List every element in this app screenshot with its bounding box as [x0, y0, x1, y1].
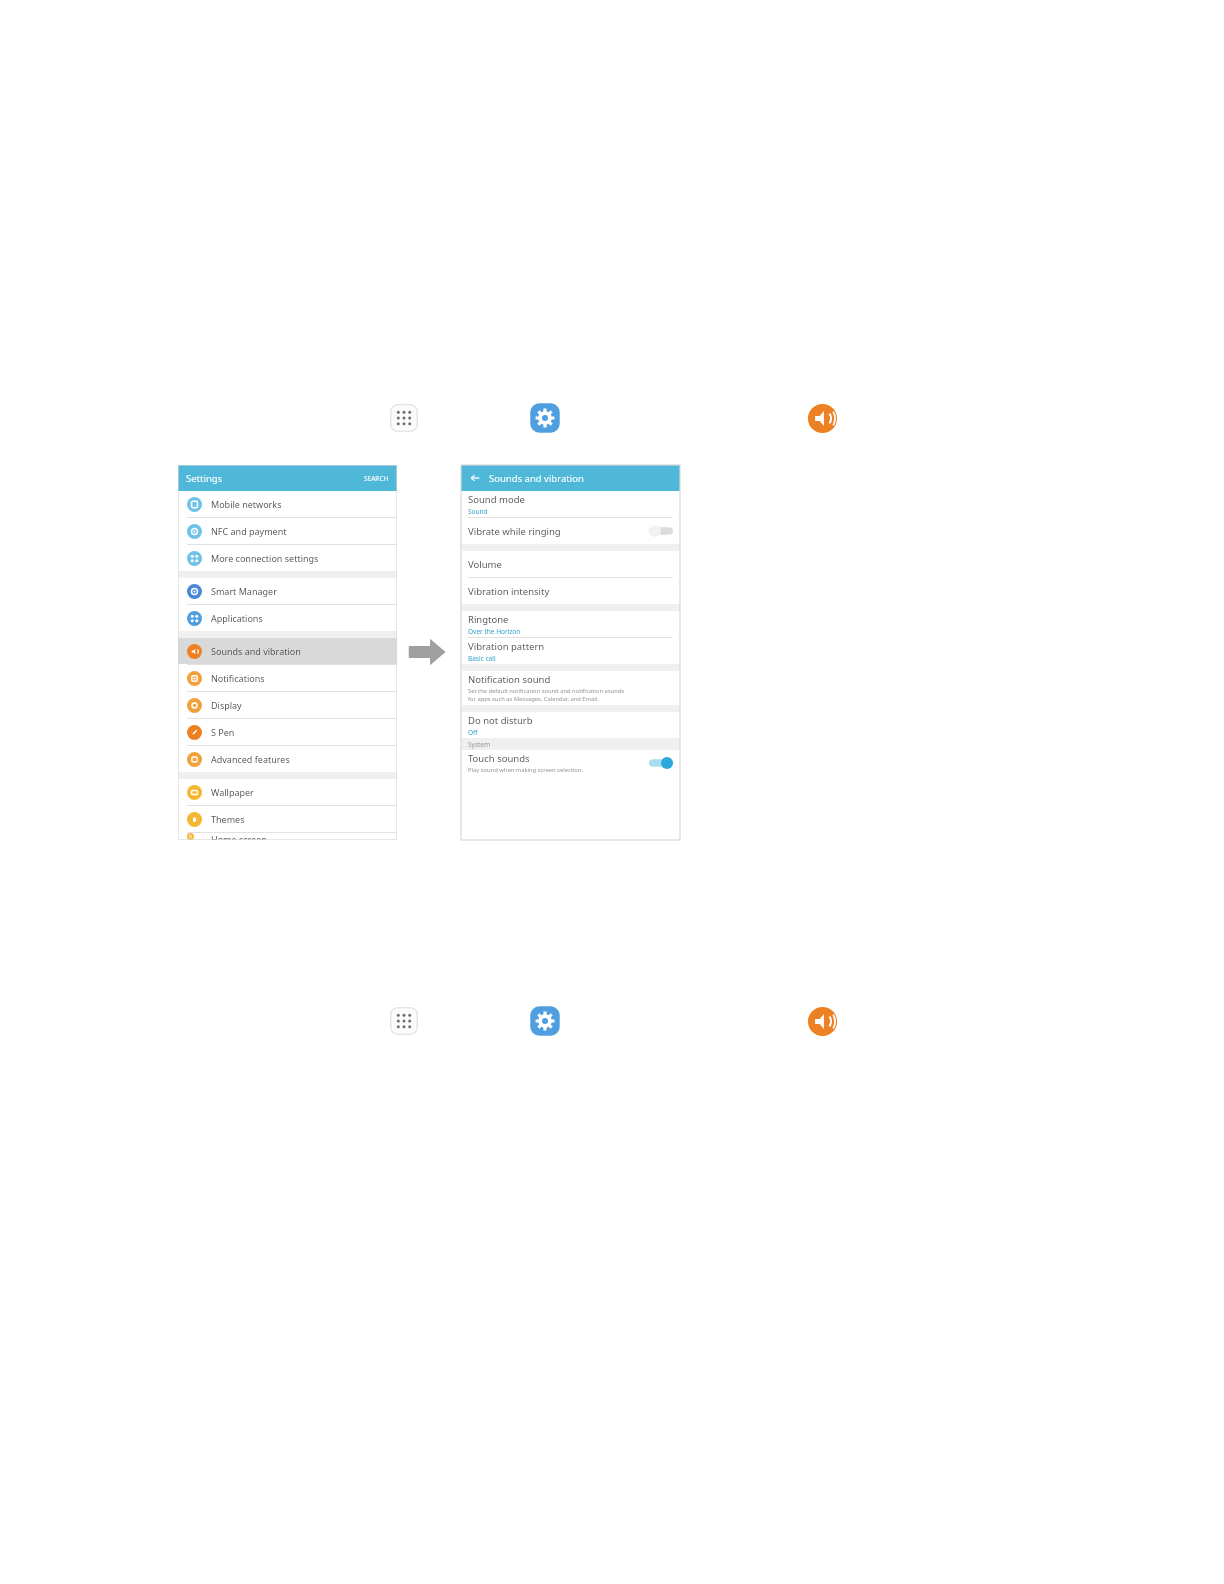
- button[interactable]: Toggle off: [649, 525, 673, 537]
- staticText: Sounds and vibration: [489, 472, 584, 485]
- staticText: Touch sounds: [468, 752, 530, 765]
- staticText: Basic call: [468, 654, 496, 663]
- staticText: Set the default notification sound and n…: [468, 687, 625, 695]
- button[interactable]: NFC and payment: [178, 518, 397, 544]
- button[interactable]: Do not disturb: [461, 712, 680, 738]
- button[interactable]: Volume: [461, 551, 680, 577]
- staticText: Notifications: [211, 672, 265, 684]
- staticText: Mobile networks: [211, 498, 282, 510]
- button[interactable]: Apps: [389, 403, 419, 433]
- staticText: Do not disturb: [468, 714, 533, 727]
- button[interactable]: Wallpaper: [178, 779, 397, 805]
- button[interactable]: Vibration pattern: [461, 638, 680, 664]
- staticText: Themes: [211, 813, 245, 825]
- button[interactable]: S Pen: [178, 719, 397, 745]
- staticText: Smart Manager: [211, 585, 277, 597]
- staticText: SEARCH: [364, 474, 389, 483]
- button[interactable]: Vibrate while ringing: [461, 518, 680, 544]
- staticText: Display: [211, 699, 242, 711]
- button[interactable]: Toggle on: [649, 757, 673, 769]
- button[interactable]: Apps: [389, 1006, 419, 1036]
- staticText: Sounds and vibration: [211, 645, 301, 657]
- staticText: Volume: [468, 558, 502, 571]
- button[interactable]: Sound mode: [461, 491, 680, 517]
- staticText: Advanced features: [211, 753, 290, 765]
- button[interactable]: Notifications: [178, 665, 397, 691]
- button[interactable]: Sounds and vibration: [178, 638, 397, 664]
- button[interactable]: Vibration intensity: [461, 578, 680, 604]
- button[interactable]: Applications: [178, 605, 397, 631]
- button[interactable]: Settings: [529, 1005, 561, 1037]
- button[interactable]: Notification sound: [461, 671, 680, 705]
- button[interactable]: Ringtone: [461, 611, 680, 637]
- button[interactable]: Display: [178, 692, 397, 718]
- staticText: Home screen: [211, 833, 267, 840]
- staticText: Sound: [468, 507, 488, 516]
- button[interactable]: Touch sounds: [461, 750, 680, 776]
- staticText: More connection settings: [211, 552, 319, 564]
- staticText: Ringtone: [468, 613, 509, 626]
- staticText: Vibration pattern: [468, 640, 545, 653]
- button[interactable]: Smart Manager: [178, 578, 397, 604]
- button[interactable]: More connection settings: [178, 545, 397, 571]
- staticText: Settings: [186, 472, 223, 485]
- staticText: Wallpaper: [211, 786, 254, 798]
- button[interactable]: Themes: [178, 806, 397, 832]
- staticText: NFC and payment: [211, 525, 287, 537]
- button[interactable]: SEARCH: [364, 474, 389, 483]
- staticText: S Pen: [211, 726, 235, 738]
- staticText: System: [468, 740, 491, 749]
- staticText: Applications: [211, 612, 263, 624]
- button[interactable]: Mobile networks: [178, 491, 397, 517]
- staticText: Off: [468, 728, 478, 737]
- staticText: Sound mode: [468, 493, 525, 506]
- staticText: Play sound when making screen selection.: [468, 766, 583, 774]
- staticText: Notification sound: [468, 673, 551, 686]
- button[interactable]: Sounds and vibration: [807, 1006, 838, 1037]
- button[interactable]: Advanced features: [178, 746, 397, 772]
- staticText: Vibration intensity: [468, 585, 550, 598]
- button[interactable]: Settings: [529, 402, 561, 434]
- button[interactable]: Back: [469, 472, 481, 484]
- staticText: for apps such as Messages, Calendar, and…: [468, 695, 599, 703]
- button[interactable]: Home screen: [178, 833, 397, 840]
- staticText: Vibrate while ringing: [468, 525, 561, 538]
- staticText: Over the Horizon: [468, 627, 521, 636]
- button[interactable]: Sounds and vibration: [807, 403, 838, 434]
